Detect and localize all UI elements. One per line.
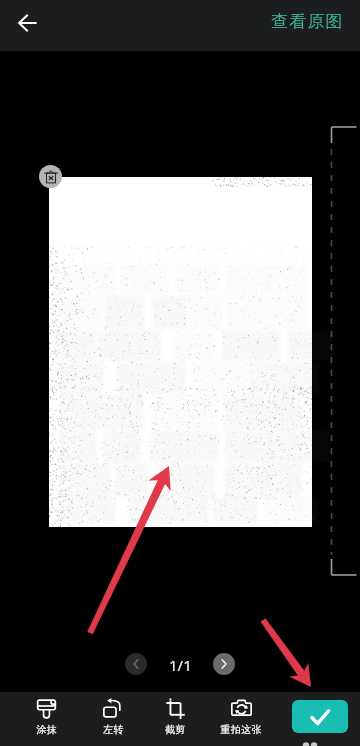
staticText: 1/1	[169, 655, 192, 675]
button[interactable]: 左转	[83, 692, 143, 746]
staticText: 涂抹	[36, 723, 57, 736]
button[interactable]: Delete page	[39, 165, 62, 188]
button[interactable]: 截剪	[145, 692, 205, 746]
staticText: 截剪	[165, 723, 186, 736]
button[interactable]: Previous page	[125, 653, 147, 675]
button[interactable]: Next page	[213, 653, 235, 675]
button[interactable]: 涂抹	[16, 692, 76, 746]
button[interactable]: Confirm	[292, 700, 348, 733]
staticText: 重拍这张	[220, 723, 262, 736]
staticText: 左转	[103, 723, 124, 736]
staticText: 查看原图	[271, 11, 344, 32]
button[interactable]: 重拍这张	[211, 692, 271, 746]
button[interactable]: 查看原图	[265, 8, 350, 35]
button[interactable]: Back	[7, 3, 47, 43]
